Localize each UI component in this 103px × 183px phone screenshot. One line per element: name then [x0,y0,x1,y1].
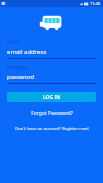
button[interactable]: email address [7,48,96,59]
staticText: Email [7,39,19,45]
staticText: 11:26 [90,1,101,6]
staticText: LOG IN [43,94,61,101]
staticText: Don't have an account? Register now! [15,126,89,132]
staticText: email address [7,48,47,56]
button[interactable]: password [7,73,96,84]
staticText: Password [7,64,28,70]
staticText: Forgot Password? [31,110,73,117]
button[interactable]: LOG IN [7,92,96,102]
button[interactable]: Don't have an account? Register now! [7,126,96,132]
staticText: password [7,73,35,81]
button[interactable]: Forgot Password? [7,110,96,117]
